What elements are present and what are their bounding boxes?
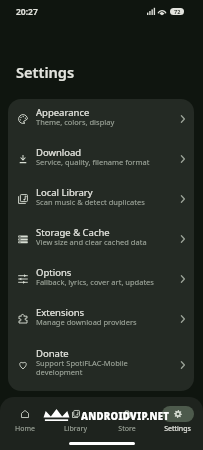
button[interactable]: Download: [8, 139, 194, 179]
button[interactable]: Library: [50, 397, 101, 434]
staticText: View size and clear cached data: [36, 237, 147, 247]
staticText: Appearance: [36, 106, 90, 119]
staticText: Extensions: [36, 306, 85, 319]
button[interactable]: Donate: [8, 339, 194, 391]
staticText: Donate: [36, 347, 69, 360]
button[interactable]: Store: [101, 397, 152, 434]
staticText: Local Library: [36, 186, 93, 199]
button[interactable]: Options: [8, 259, 194, 299]
staticText: Options: [36, 266, 72, 279]
staticText: Service, quality, filename format: [36, 157, 150, 167]
staticText: Settings: [164, 424, 191, 434]
staticText: Scan music & detect duplicates: [36, 197, 145, 207]
staticText: Store: [118, 424, 136, 434]
button[interactable]: Home: [0, 397, 50, 434]
staticText: Download: [36, 146, 82, 159]
button[interactable]: Local Library: [8, 179, 194, 219]
button[interactable]: Storage & Cache: [8, 219, 194, 259]
staticText: Storage & Cache: [36, 226, 110, 239]
staticText: Support SpotiFLAC-Mobile development: [36, 358, 176, 377]
staticText: 20:27: [16, 6, 38, 18]
staticText: ANDROIDVIP.NET: [81, 410, 170, 423]
staticText: Home: [15, 424, 35, 434]
staticText: Manage download providers: [36, 317, 137, 327]
staticText: Library: [64, 424, 87, 434]
button[interactable]: Appearance: [8, 99, 194, 139]
staticText: Settings: [16, 62, 75, 82]
button[interactable]: Settings: [152, 397, 203, 434]
staticText: Theme, colors, display: [36, 117, 115, 127]
staticText: Fallback, lyrics, cover art, updates: [36, 277, 154, 287]
button[interactable]: Extensions: [8, 299, 194, 339]
staticText: 72: [174, 8, 181, 15]
